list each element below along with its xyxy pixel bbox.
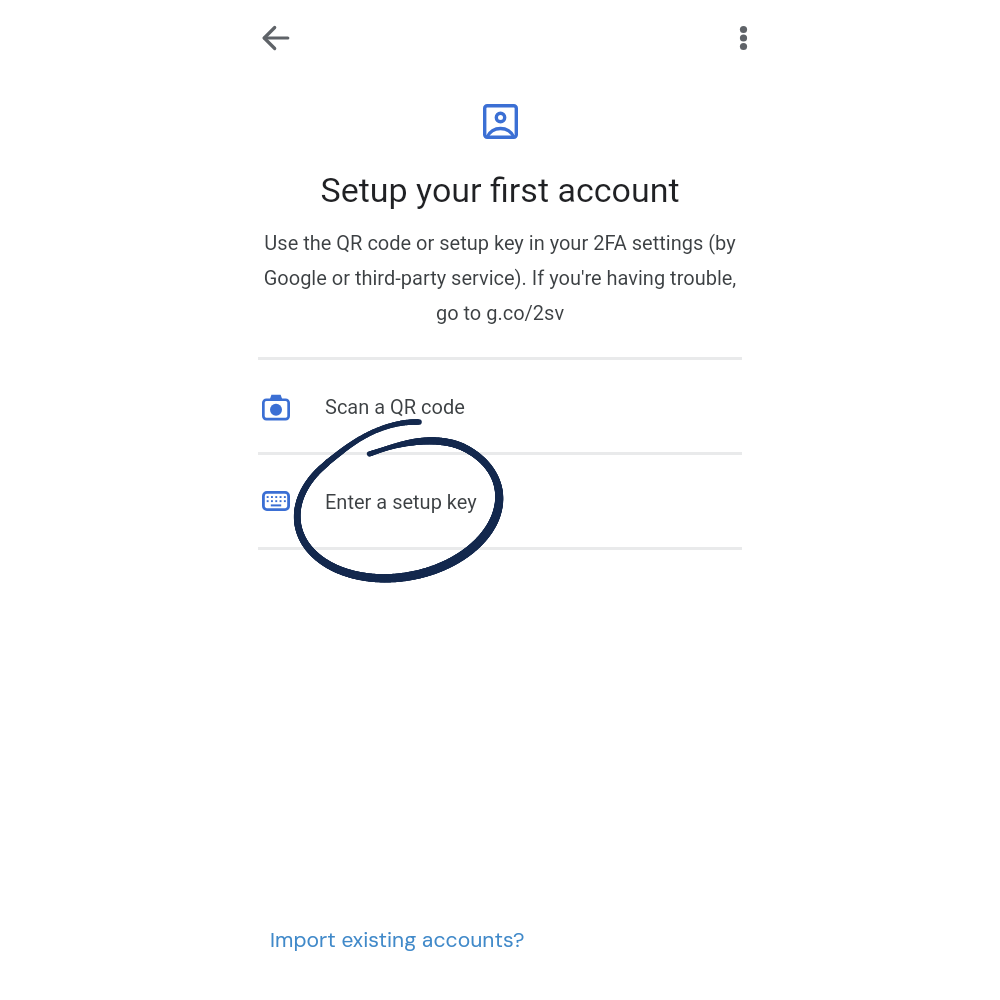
button[interactable]: Scan a QR code: [258, 359, 742, 453]
staticText: Setup your first account: [0, 170, 1000, 210]
button[interactable]: Enter a setup key: [258, 454, 742, 548]
staticText: Scan a QR code: [325, 395, 465, 418]
button[interactable]: Back: [252, 14, 300, 62]
staticText: Enter a setup key: [325, 490, 477, 513]
button[interactable]: Import existing accounts?: [256, 914, 525, 964]
button[interactable]: More options: [719, 14, 767, 62]
staticText: Use the QR code or setup key in your 2FA…: [258, 231, 742, 325]
staticText: Import existing accounts?: [270, 926, 525, 953]
